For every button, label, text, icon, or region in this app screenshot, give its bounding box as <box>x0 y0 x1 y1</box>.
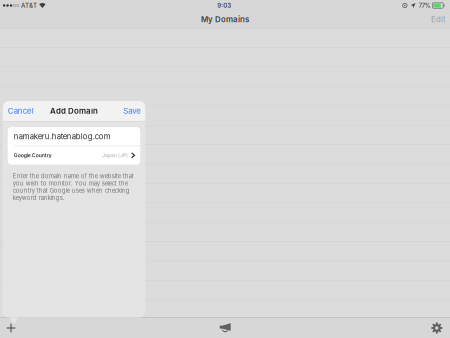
staticText: Add Domain <box>50 106 98 116</box>
staticText: Japan (JP) <box>102 152 128 158</box>
button[interactable]: Cancel <box>5 102 37 120</box>
staticText: Edit <box>431 15 446 24</box>
staticText: AT&T <box>21 2 37 9</box>
staticText: Google Country <box>14 152 52 158</box>
staticText: 9:03 <box>217 2 231 9</box>
button[interactable]: Edit <box>425 11 450 28</box>
staticText: 77% <box>419 2 431 9</box>
button[interactable]: Google Country <box>8 146 140 165</box>
button[interactable]: Add domain <box>0 318 22 338</box>
staticText: Save <box>123 106 141 116</box>
staticText: Cancel <box>8 106 34 116</box>
staticText: My Domains <box>201 15 249 24</box>
staticText: namakeru.hatenablog.com <box>14 132 111 141</box>
button[interactable]: Save <box>120 102 144 120</box>
button[interactable]: Settings <box>426 318 448 338</box>
staticText: Enter the domain name of the website tha… <box>13 173 134 201</box>
button[interactable]: Announcements <box>212 318 238 338</box>
